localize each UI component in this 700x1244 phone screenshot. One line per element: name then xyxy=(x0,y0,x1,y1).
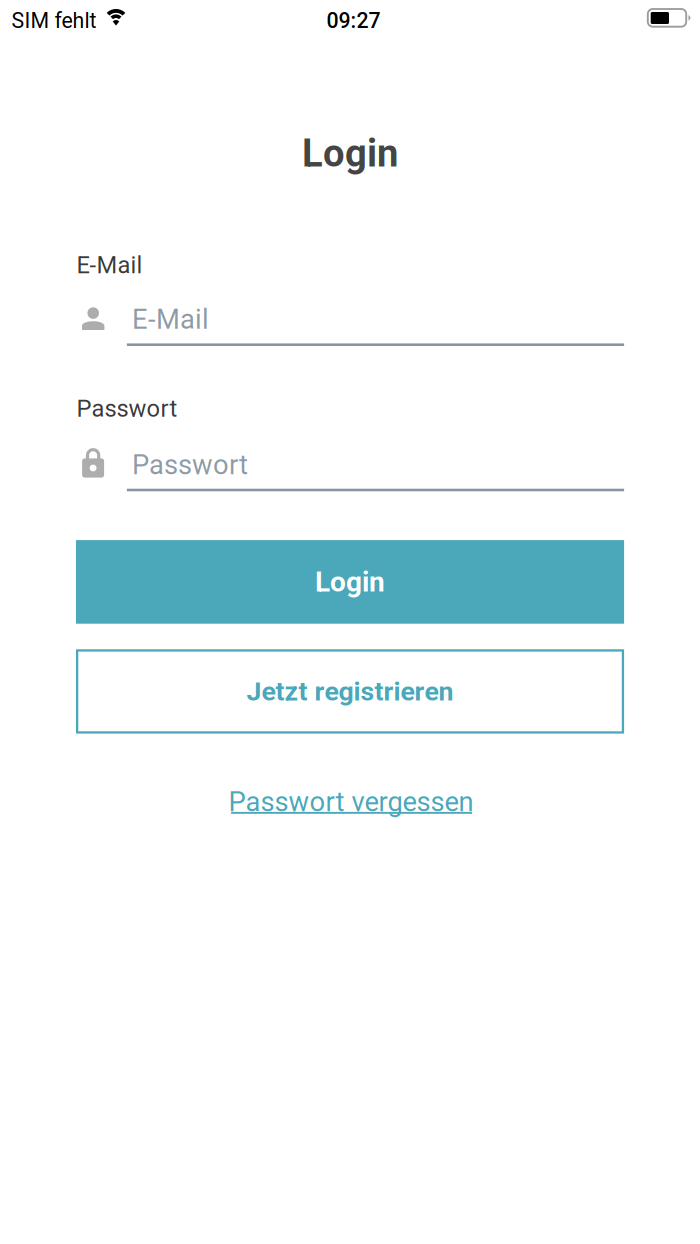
staticText: Passwort xyxy=(76,395,177,422)
staticText: E-Mail xyxy=(76,251,142,279)
button[interactable]: Passwort vergessen xyxy=(229,786,475,814)
button[interactable]: Login xyxy=(76,540,624,624)
staticText: Jetzt registrieren xyxy=(247,676,454,707)
button[interactable]: Jetzt registrieren xyxy=(76,649,624,734)
staticText: E-Mail xyxy=(132,303,209,335)
staticText: Passwort vergessen xyxy=(229,786,474,818)
staticText: Login xyxy=(315,565,385,598)
staticText: Login xyxy=(302,131,398,176)
staticText: SIM fehlt xyxy=(11,8,96,33)
staticText: Passwort xyxy=(132,449,248,481)
staticText: 09:27 xyxy=(326,8,380,33)
